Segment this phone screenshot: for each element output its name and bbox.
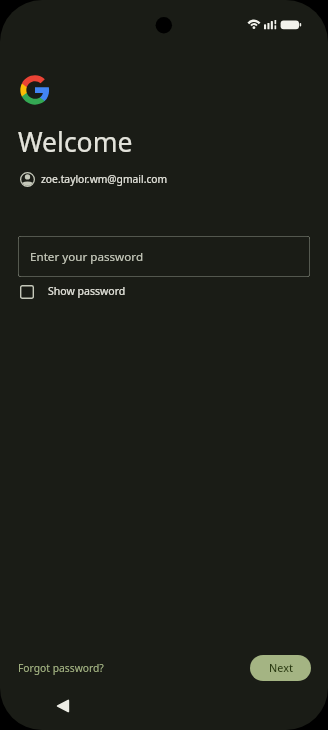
button[interactable]: Show password: [18, 283, 96, 297]
button[interactable]: Next: [250, 655, 311, 681]
button[interactable]: Back: [45, 689, 81, 723]
staticText: Next: [269, 661, 293, 675]
button[interactable]: Enter your password: [18, 236, 310, 277]
staticText: zoe.taylor.wm@gmail.com: [41, 172, 168, 186]
staticText: Show password: [48, 284, 126, 298]
staticText: Enter your password: [30, 249, 144, 265]
staticText: Welcome: [18, 124, 133, 160]
button[interactable]: Forgot password?: [18, 661, 104, 675]
